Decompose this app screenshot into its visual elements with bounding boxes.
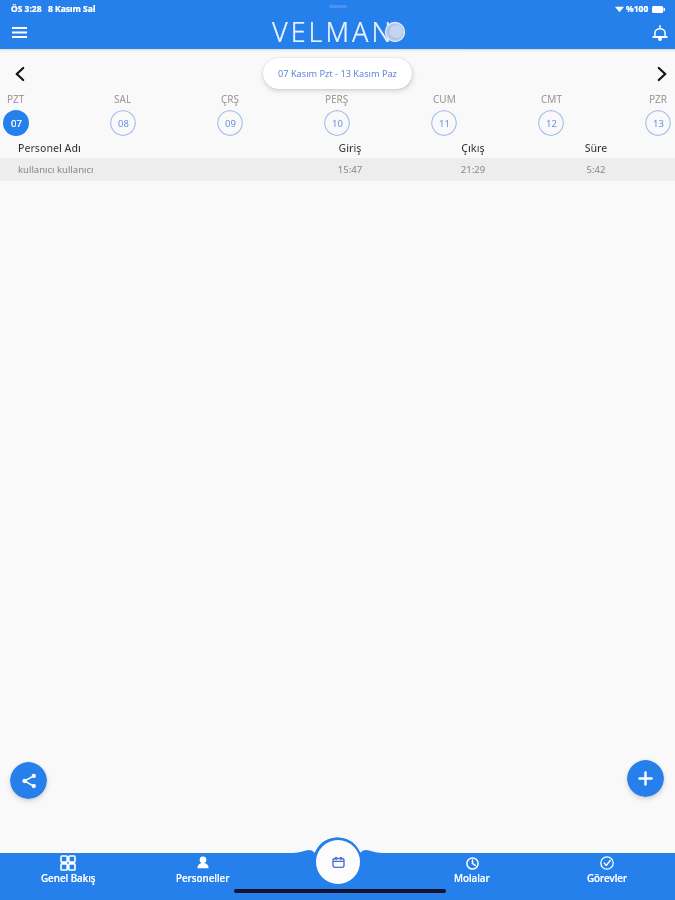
staticText: VELMAN [272,13,395,49]
button[interactable]: Genel Bakış [28,856,108,885]
staticText: PZT [7,92,25,106]
button[interactable]: CUM [414,90,474,138]
button[interactable]: PZR [628,90,675,138]
button[interactable]: 07 Kasım Pzt - 13 Kasım Paz [263,58,412,89]
staticText: Personel Adı [18,141,81,155]
staticText: CMT [541,92,562,106]
button[interactable]: CMT [521,90,581,138]
staticText: Molalar [454,872,490,885]
staticText: Çıkış [443,141,503,155]
staticText: %100 [626,3,649,15]
staticText: 08 [118,117,129,130]
staticText: CUM [433,92,456,106]
button[interactable]: kullanıcı kullanıcı [0,158,675,181]
staticText: Görevler [587,872,628,885]
staticText: SAL [114,92,132,106]
button[interactable]: Notifications [647,20,673,46]
staticText: 07 [11,117,22,130]
button[interactable]: Görevler [567,856,647,885]
staticText: Genel Bakış [41,872,96,885]
staticText: 09 [225,117,236,130]
button[interactable]: Molalar [432,857,512,885]
button[interactable]: PERŞ [307,90,367,138]
button[interactable]: Next week [650,62,674,86]
staticText: 12 [546,117,557,130]
staticText: 8 Kasım Sal [48,3,96,15]
button[interactable]: Personeller [163,856,243,885]
staticText: ÖS 3:28 [11,3,42,15]
button[interactable]: Share [10,762,47,799]
staticText: 10 [332,117,343,130]
button[interactable]: Previous week [8,62,32,86]
button[interactable]: Menu [6,19,32,45]
staticText: kullanıcı kullanıcı [18,163,94,176]
button[interactable]: SAL [93,90,153,138]
staticText: Süre [566,141,626,155]
staticText: PERŞ [325,92,349,106]
button[interactable]: Calendar [316,840,360,884]
staticText: PZR [649,92,667,106]
staticText: 07 Kasım Pzt - 13 Kasım Paz [278,67,397,80]
button[interactable]: PZT [0,90,46,138]
staticText: 5:42 [566,163,626,176]
staticText: 15:47 [320,163,380,176]
button[interactable]: ÇRŞ [200,90,260,138]
staticText: Personeller [176,872,230,885]
staticText: ÇRŞ [221,92,240,106]
staticText: 13 [653,117,664,130]
staticText: 21:29 [443,163,503,176]
button[interactable]: Add [627,760,664,797]
staticText: 11 [439,117,450,130]
staticText: Giriş [320,141,380,155]
